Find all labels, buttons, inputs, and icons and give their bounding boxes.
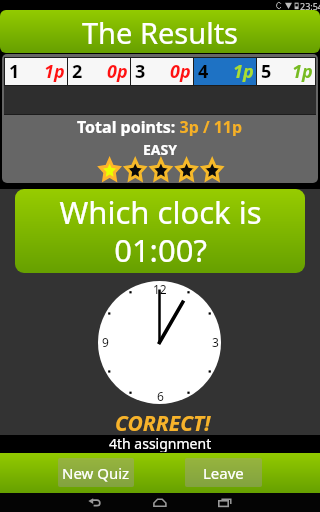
staticText: 5: [261, 59, 272, 84]
staticText: 4th assignment: [109, 434, 212, 452]
staticText: New Quiz: [62, 463, 130, 483]
staticText: 9: [102, 334, 109, 350]
staticText: 3: [135, 59, 146, 84]
button[interactable]: New Quiz: [58, 458, 134, 487]
button[interactable]: 5: [257, 58, 315, 85]
button[interactable]: Home: [140, 493, 180, 512]
staticText: 1p: [44, 59, 65, 84]
button[interactable]: Back: [75, 493, 115, 512]
button[interactable]: 2: [68, 58, 130, 85]
staticText: 3: [212, 334, 219, 350]
button[interactable]: Leave: [185, 458, 262, 487]
button[interactable]: Recent apps: [205, 493, 245, 512]
staticText: CORRECT!: [115, 409, 211, 435]
staticText: Total points: 3p / 11p: [77, 116, 243, 136]
button[interactable]: 4: [194, 58, 256, 85]
staticText: 4: [198, 59, 209, 84]
staticText: The Results: [82, 13, 238, 52]
staticText: 1p: [292, 59, 313, 84]
button[interactable]: 1: [5, 58, 67, 85]
staticText: Leave: [203, 463, 244, 483]
staticText: 1p: [233, 59, 254, 84]
button[interactable]: 3: [131, 58, 193, 85]
staticText: 1: [9, 59, 20, 84]
staticText: 2: [72, 59, 83, 84]
staticText: 0p: [107, 59, 128, 84]
button[interactable]: The Results: [0, 10, 320, 53]
staticText: Which clock is 01:00?: [59, 191, 262, 271]
staticText: EASY: [143, 140, 178, 158]
staticText: 0p: [170, 59, 191, 84]
staticText: 12: [153, 281, 167, 297]
staticText: 6: [157, 388, 164, 404]
button[interactable]: Which clock is 01:00?: [15, 189, 305, 273]
staticText: 23:54: [300, 0, 320, 10]
